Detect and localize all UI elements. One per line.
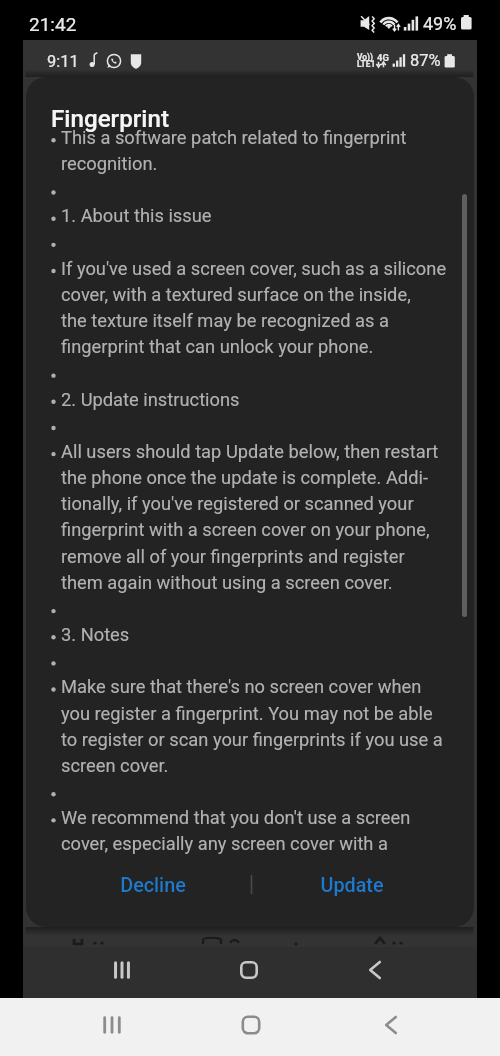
- staticText: If you've used a screen cover, such as a…: [61, 258, 447, 279]
- staticText: remove all of your fingerprints and regi…: [61, 546, 405, 567]
- button[interactable]: Home: [225, 946, 273, 994]
- staticText: cover, especially any screen cover with …: [61, 833, 388, 854]
- button[interactable]: Recent apps: [98, 946, 146, 994]
- staticText: This a software patch related to fingerp…: [61, 127, 407, 148]
- staticText: LTE1: [357, 59, 376, 69]
- staticText: the texture itself may be recognized as …: [61, 310, 389, 331]
- staticText: them again without using a screen cover.: [61, 572, 393, 593]
- staticText: 4G: [377, 52, 389, 63]
- staticText: Fingerprint: [51, 105, 169, 133]
- staticText: Vo)): [357, 52, 373, 62]
- staticText: recognition.: [61, 153, 158, 174]
- staticText: Decline: [120, 874, 186, 897]
- staticText: 1. About this issue: [61, 205, 212, 226]
- staticText: 3. Notes: [61, 624, 130, 645]
- staticText: We recommend that you don't use a screen: [61, 807, 411, 828]
- staticText: to register or scan your fingerprints if…: [61, 729, 443, 750]
- staticText: cover, with a textured surface on the in…: [61, 284, 411, 305]
- button[interactable]: Update: [254, 861, 450, 909]
- button[interactable]: Recent apps: [88, 1001, 136, 1049]
- staticText: fingerprint that can unlock your phone.: [61, 336, 374, 357]
- staticText: tionally, if you've registered or scanne…: [61, 493, 414, 514]
- staticText: Make sure that there's no screen cover w…: [61, 676, 422, 697]
- staticText: you register a fingerprint. You may not …: [61, 703, 433, 724]
- staticText: 21:42: [29, 13, 77, 35]
- button[interactable]: Home: [227, 1001, 275, 1049]
- button[interactable]: Decline: [55, 861, 251, 909]
- staticText: 2. Update instructions: [61, 389, 240, 410]
- staticText: 9:11: [47, 52, 79, 71]
- button[interactable]: Back: [351, 946, 399, 994]
- staticText: All users should tap Update below, then …: [61, 441, 439, 462]
- staticText: screen cover.: [61, 755, 169, 776]
- staticText: 49%: [423, 13, 457, 34]
- staticText: the phone once the update is complete. A…: [61, 467, 429, 488]
- staticText: fingerprint with a screen cover on your …: [61, 519, 430, 540]
- button[interactable]: Back: [367, 1001, 415, 1049]
- staticText: Update: [320, 874, 384, 897]
- staticText: 87%: [410, 51, 441, 70]
